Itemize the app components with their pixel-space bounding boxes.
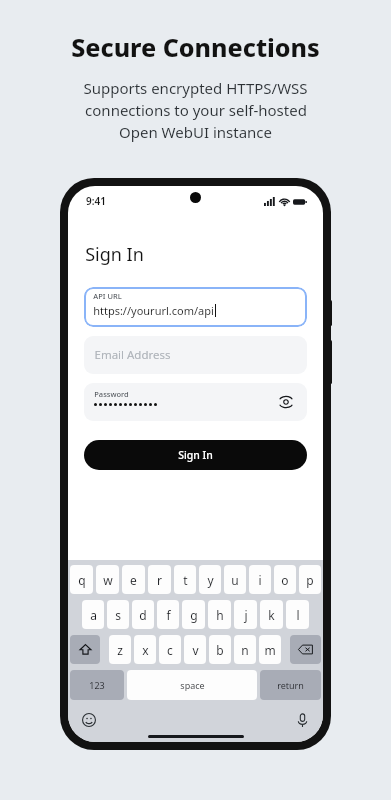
button[interactable]: m (259, 635, 281, 664)
button[interactable]: v (184, 635, 206, 664)
staticText: z (117, 642, 123, 658)
button[interactable]: r (148, 565, 171, 594)
staticText: return (277, 679, 304, 691)
staticText: 123 (89, 679, 105, 691)
staticText: f (166, 607, 171, 623)
button[interactable]: 123 (70, 670, 124, 700)
button[interactable]: w (96, 565, 119, 594)
button[interactable]: l (286, 600, 309, 629)
button[interactable]: q (70, 565, 93, 594)
staticText: n (241, 642, 249, 658)
staticText: l (296, 607, 300, 623)
staticText: connections to your self-hosted (85, 100, 307, 120)
button[interactable]: z (109, 635, 131, 664)
staticText: x (142, 642, 149, 658)
button[interactable]: s (107, 600, 129, 629)
staticText: v (192, 642, 199, 658)
staticText: u (231, 572, 239, 588)
staticText: j (244, 607, 248, 623)
staticText: s (115, 607, 121, 623)
button[interactable]: h (208, 600, 231, 629)
staticText: r (157, 572, 162, 588)
staticText: Sign In (178, 448, 213, 462)
button[interactable]: y (199, 565, 221, 594)
staticText: Open WebUI instance (119, 122, 272, 142)
staticText: g (190, 607, 198, 623)
button[interactable]: Emoji (80, 711, 98, 729)
staticText: a (90, 607, 97, 623)
staticText: h (216, 607, 224, 623)
staticText: space (180, 679, 205, 691)
button[interactable]: API URL (84, 287, 307, 327)
staticText: b (216, 642, 224, 658)
button[interactable]: t (174, 565, 196, 594)
button[interactable]: d (132, 600, 154, 629)
staticText: d (139, 607, 147, 623)
staticText: i (258, 572, 262, 588)
staticText: m (264, 642, 276, 658)
button[interactable]: f (157, 600, 179, 629)
button[interactable]: Voice input (293, 711, 311, 729)
button[interactable]: p (299, 565, 321, 594)
staticText: Secure Connections (71, 30, 320, 64)
button[interactable]: o (274, 565, 296, 594)
button[interactable]: u (224, 565, 246, 594)
staticText: k (268, 607, 275, 623)
button[interactable]: b (209, 635, 231, 664)
staticText: https://yoururl.com/api (93, 303, 214, 318)
staticText: p (306, 572, 314, 588)
staticText: Email Address (94, 347, 171, 363)
staticText: y (207, 572, 214, 588)
button[interactable]: Sign In (84, 440, 307, 470)
button[interactable]: e (122, 565, 145, 594)
button[interactable]: i (249, 565, 271, 594)
staticText: Password (94, 389, 129, 399)
staticText: c (167, 642, 173, 658)
button[interactable]: n (234, 635, 256, 664)
button[interactable]: Key (70, 635, 100, 664)
staticText: t (183, 572, 188, 588)
staticText: w (103, 572, 113, 588)
button[interactable]: c (159, 635, 181, 664)
button[interactable]: Show password (275, 391, 297, 413)
staticText: 9:41 (86, 194, 106, 208)
staticText: API URL (93, 291, 122, 301)
staticText: e (130, 572, 137, 588)
button[interactable]: Password (84, 383, 307, 421)
button[interactable]: Key (290, 635, 321, 664)
button[interactable]: x (134, 635, 156, 664)
button[interactable]: j (234, 600, 257, 629)
button[interactable]: return (260, 670, 321, 700)
button[interactable]: k (260, 600, 283, 629)
staticText: o (281, 572, 289, 588)
button[interactable]: space (127, 670, 257, 700)
staticText: Supports encrypted HTTPS/WSS (83, 78, 308, 98)
button[interactable]: a (82, 600, 104, 629)
button[interactable]: g (182, 600, 205, 629)
staticText: Sign In (85, 242, 144, 267)
staticText: q (78, 572, 86, 588)
button[interactable]: Email Address (84, 336, 307, 374)
